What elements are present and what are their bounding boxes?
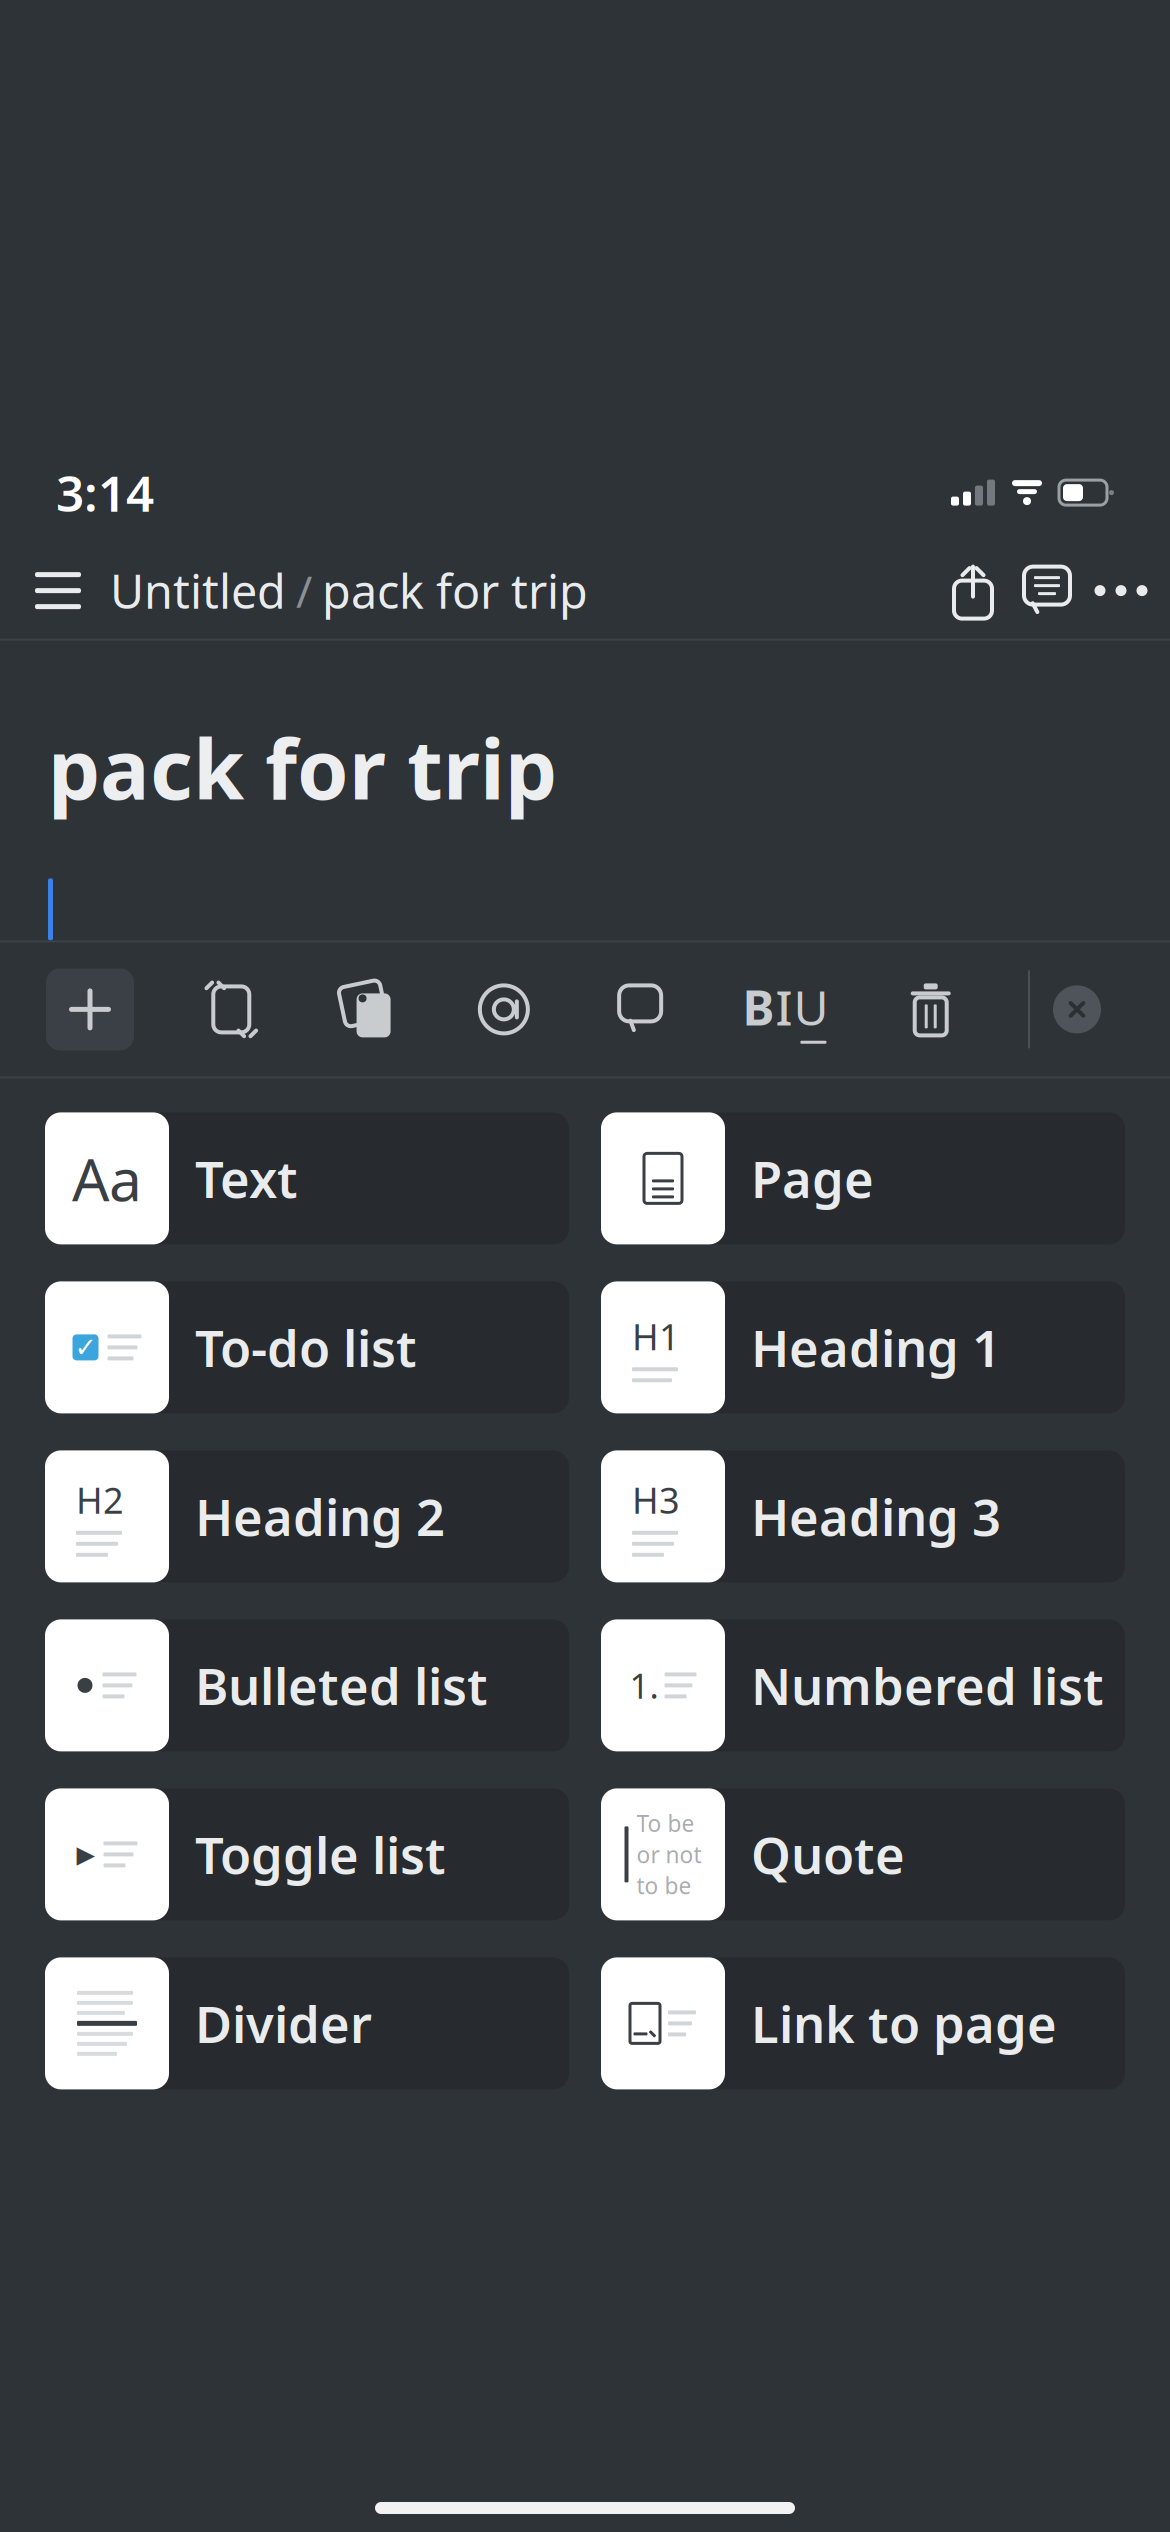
staticText: Quote	[751, 1821, 905, 1888]
staticText: To-do list	[195, 1314, 417, 1381]
staticText: Heading 2	[195, 1483, 445, 1550]
staticText: or not	[636, 1839, 701, 1869]
button[interactable]: To be	[601, 1788, 1125, 1920]
staticText: B	[742, 975, 774, 1039]
staticText: Numbered list	[751, 1652, 1104, 1719]
button[interactable]: Insert image	[329, 965, 407, 1053]
button[interactable]: Comment	[601, 965, 679, 1053]
staticText: /	[296, 561, 312, 620]
staticText: To be	[636, 1808, 694, 1838]
button[interactable]: H2	[45, 1450, 569, 1582]
staticText: Untitled	[110, 560, 286, 622]
button[interactable]: H3	[601, 1450, 1125, 1582]
button[interactable]: 1.	[601, 1619, 1125, 1751]
staticText: ✓	[74, 1332, 96, 1363]
staticText: I	[775, 975, 792, 1039]
staticText: ▶	[76, 1841, 94, 1868]
staticText: U	[793, 975, 828, 1039]
staticText: Divider	[195, 1990, 372, 2057]
button[interactable]: Divider	[45, 1957, 569, 2089]
staticText: 3:14	[56, 460, 154, 525]
button[interactable]: More options	[1084, 543, 1158, 639]
staticText: 1.	[629, 1662, 658, 1708]
staticText: pack for trip	[322, 560, 588, 622]
button[interactable]: Text style	[737, 965, 833, 1053]
staticText: H3	[632, 1476, 680, 1524]
button[interactable]: Bulleted list	[45, 1619, 569, 1751]
staticText: Page	[751, 1145, 874, 1212]
staticText: Link to page	[751, 1990, 1057, 2057]
button[interactable]: Link to page	[601, 1957, 1125, 2089]
button[interactable]: Share	[936, 543, 1010, 639]
button[interactable]: Untitled	[104, 543, 594, 639]
button[interactable]: H1	[601, 1281, 1125, 1413]
staticText: Text	[195, 1145, 298, 1212]
button[interactable]: Mention	[465, 965, 543, 1053]
button[interactable]: Close keyboard	[1030, 965, 1124, 1053]
staticText: pack for trip	[48, 713, 557, 822]
staticText: Heading 1	[751, 1314, 1001, 1381]
staticText: Heading 3	[751, 1483, 1001, 1550]
staticText: H2	[76, 1476, 124, 1524]
button[interactable]: Comments	[1010, 543, 1084, 639]
button[interactable]: Menu	[12, 543, 104, 639]
button[interactable]: ✓	[45, 1281, 569, 1413]
staticText: Aa	[72, 1139, 142, 1217]
button[interactable]: Aa	[45, 1112, 569, 1244]
staticText: Toggle list	[195, 1821, 446, 1888]
button[interactable]: Delete block	[892, 965, 970, 1053]
staticText: H1	[632, 1312, 680, 1360]
button[interactable]: Page	[601, 1112, 1125, 1244]
button[interactable]: ▶	[45, 1788, 569, 1920]
staticText: to be	[636, 1870, 691, 1900]
button[interactable]: Insert block	[46, 968, 134, 1050]
button[interactable]: Move block	[192, 965, 270, 1053]
staticText: Bulleted list	[195, 1652, 488, 1719]
